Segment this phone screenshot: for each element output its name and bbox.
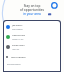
staticText: Within 10 mi xyxy=(12,38,24,41)
staticText: Stay on top of opportunities in your are… xyxy=(4,4,60,16)
staticText: More options xyxy=(11,56,26,59)
staticText: Nearby jobs xyxy=(12,34,26,37)
staticText: Job alerts xyxy=(12,24,23,27)
button[interactable]: Saved roles xyxy=(4,42,60,52)
staticText: Recommended xyxy=(7,63,21,66)
button[interactable]: Job alerts xyxy=(4,22,60,32)
button[interactable]: More options xyxy=(4,52,60,62)
staticText: Your list xyxy=(12,48,20,51)
staticText: Saved roles xyxy=(12,44,25,47)
button[interactable]: Nearby jobs xyxy=(4,32,60,42)
staticText: Get notified xyxy=(12,28,23,31)
